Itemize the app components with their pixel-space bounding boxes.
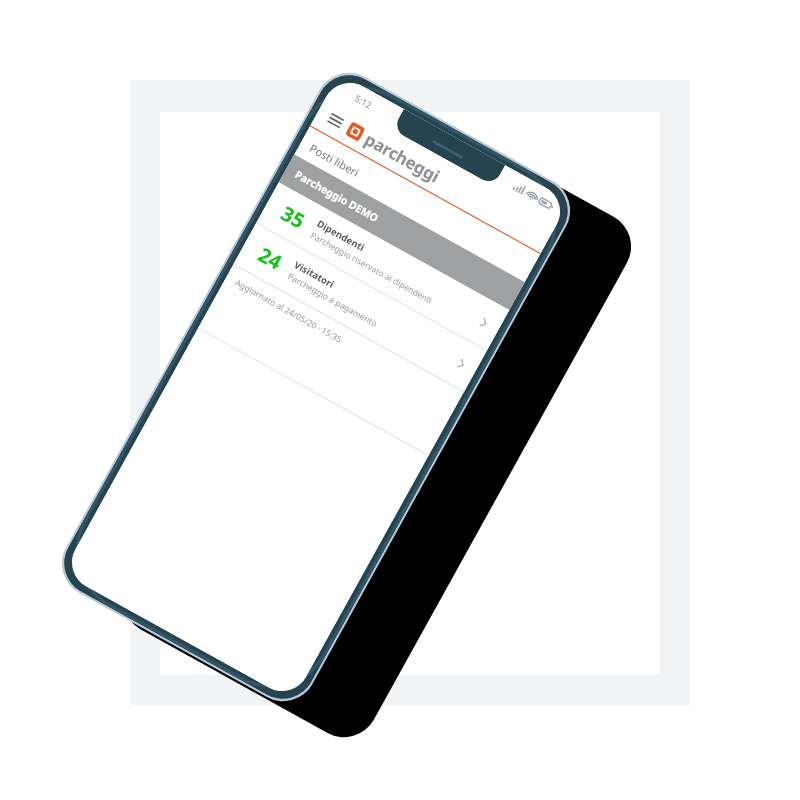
staticText: 24 bbox=[254, 241, 287, 276]
other: Apri Dipendenti bbox=[471, 310, 496, 334]
staticText: Parcheggio riservato ai dipendenti bbox=[308, 229, 435, 307]
staticText: 5:12 bbox=[353, 92, 374, 111]
staticText: Visitatori bbox=[292, 258, 337, 291]
staticText: 35 bbox=[276, 200, 310, 234]
staticText: Dipendenti bbox=[315, 217, 367, 254]
button[interactable]: 35 bbox=[256, 182, 509, 350]
staticText: Aggiornato al 24/05/20 · 15:35 bbox=[233, 277, 345, 346]
staticText: Parcheggio a pagamento bbox=[286, 270, 380, 330]
staticText: Parcheggio DEMO bbox=[293, 167, 382, 225]
staticText: Posti liberi bbox=[307, 140, 362, 180]
button[interactable]: Menu bbox=[321, 105, 351, 135]
button[interactable]: 24 bbox=[233, 223, 487, 391]
other: Apri Visitatori bbox=[448, 351, 473, 375]
staticText: parcheggi bbox=[361, 127, 444, 188]
